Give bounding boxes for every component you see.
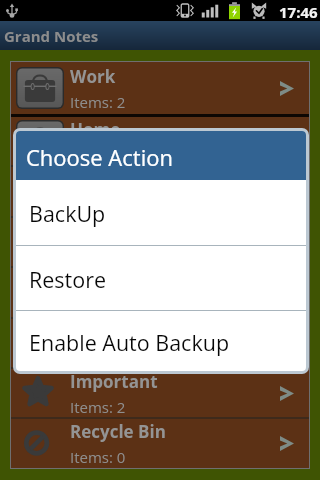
staticText: Items: 2 <box>70 397 126 417</box>
button[interactable]: Travel <box>11 268 309 317</box>
staticText: Ideas <box>70 168 116 191</box>
button[interactable]: BackUp <box>16 180 306 245</box>
staticText: Choose Action <box>26 142 173 172</box>
staticText: Items: 2 <box>70 92 126 112</box>
staticText: Home <box>70 118 121 141</box>
button[interactable]: Ideas <box>11 167 309 216</box>
staticText: Important <box>70 370 158 393</box>
staticText: Grand Notes <box>4 26 99 46</box>
button[interactable]: Work <box>11 62 309 114</box>
staticText: Items: 7 <box>70 347 126 367</box>
staticText: Enable Auto Backup <box>29 328 230 357</box>
button[interactable]: Personal <box>11 319 309 367</box>
staticText: Travel <box>70 269 123 292</box>
button[interactable]: Shopping <box>11 218 309 266</box>
staticText: Items: 0 <box>70 447 126 467</box>
staticText: Work <box>70 65 116 88</box>
staticText: Items: 4 <box>70 296 126 316</box>
staticText: 17:46 <box>279 2 318 22</box>
button[interactable]: Restore <box>16 246 306 310</box>
staticText: Recycle Bin <box>70 420 166 443</box>
staticText: Items: 3 <box>70 145 126 165</box>
staticText: Shopping <box>70 219 149 242</box>
button[interactable]: Recycle Bin <box>11 419 309 468</box>
staticText: Restore <box>29 265 107 294</box>
staticText: BackUp <box>29 199 106 228</box>
staticText: Personal <box>70 320 145 343</box>
staticText: Items: 5 <box>70 195 126 215</box>
button[interactable]: Important <box>11 369 309 417</box>
button[interactable]: Enable Auto Backup <box>16 311 306 371</box>
button[interactable]: Home <box>11 117 309 165</box>
